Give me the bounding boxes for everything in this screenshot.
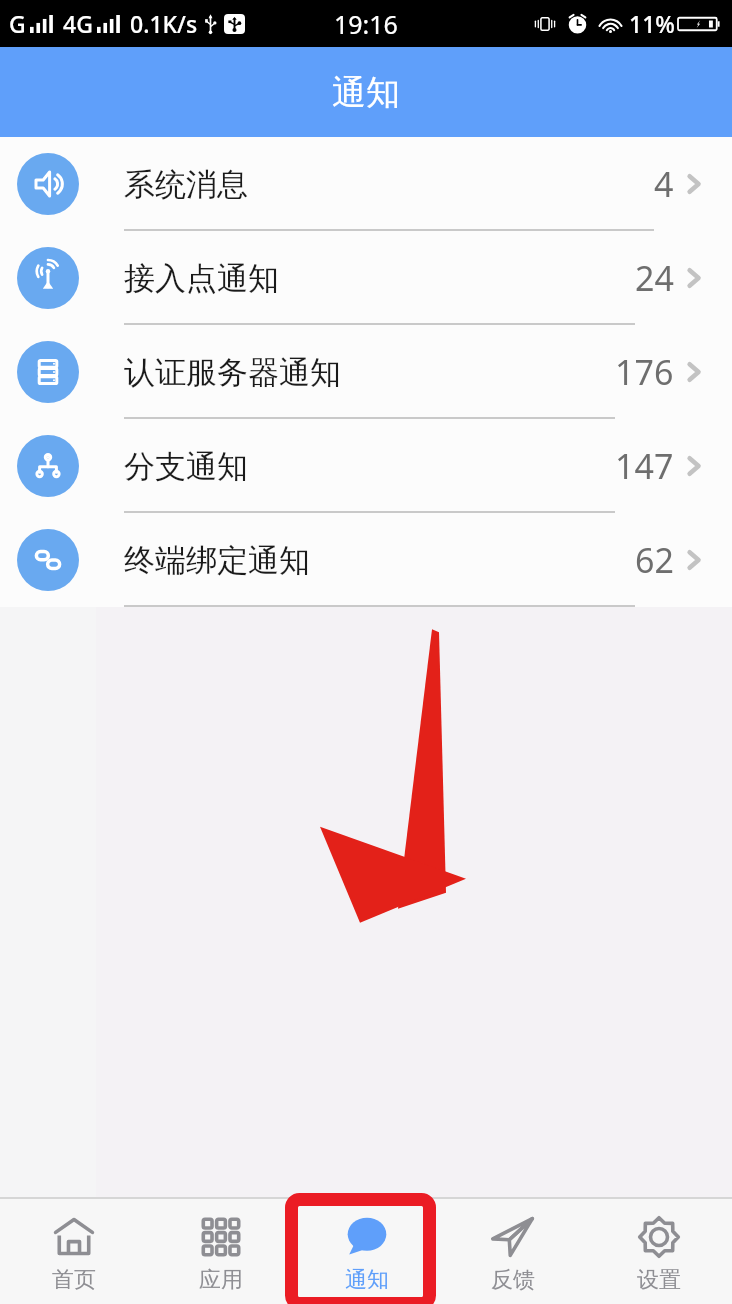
button[interactable]: 首页 [0,1197,147,1304]
button[interactable]: 接入点通知 [0,231,732,325]
button[interactable]: 反馈 [440,1197,586,1304]
staticText: 4 [654,161,674,207]
staticText: 认证服务器通知 [124,353,341,392]
staticText: 分支通知 [124,447,248,486]
staticText: 11% [629,8,675,39]
button[interactable]: 认证服务器通知 [0,325,732,419]
staticText: 19:16 [334,7,398,41]
button[interactable]: 终端绑定通知 [0,513,732,607]
staticText: 设置 [637,1266,681,1294]
button[interactable]: 系统消息 [0,137,732,231]
button[interactable]: 设置 [586,1197,732,1304]
staticText: 系统消息 [124,165,248,204]
staticText: 147 [615,443,674,489]
staticText: 通知 [345,1266,389,1294]
button[interactable]: 分支通知 [0,419,732,513]
staticText: 应用 [199,1266,243,1294]
staticText: 4G [63,8,93,39]
staticText: 接入点通知 [124,259,279,298]
staticText: 0.1K/s [130,8,198,39]
staticText: 终端绑定通知 [124,541,310,580]
staticText: 首页 [52,1266,96,1294]
button[interactable]: 通知 [294,1197,440,1304]
staticText: 24 [635,255,674,301]
staticText: 通知 [332,71,400,114]
button[interactable]: 应用 [147,1197,294,1304]
staticText: G [9,8,26,39]
staticText: 反馈 [491,1266,535,1294]
staticText: 62 [635,537,674,583]
staticText: 176 [615,349,674,395]
